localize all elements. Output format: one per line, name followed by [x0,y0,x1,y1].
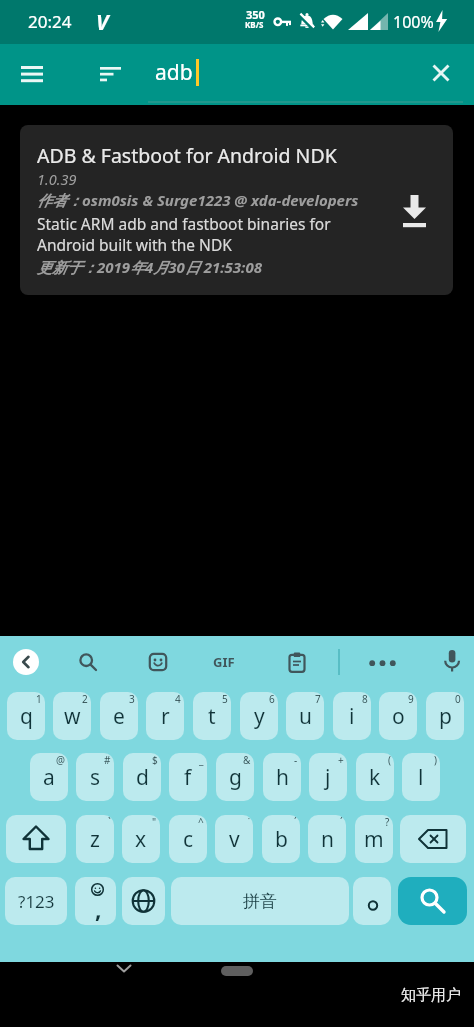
staticText: 知乎用户 [401,986,461,1005]
staticText: ˙ [248,815,250,829]
staticText: 100% [393,11,434,33]
staticText: GIF [213,653,235,671]
staticText: u [299,702,312,731]
staticText: 9 [408,692,414,706]
button[interactable] [10,54,54,94]
button[interactable] [400,815,466,863]
button[interactable] [419,54,463,94]
button[interactable] [140,644,176,680]
staticText: m [364,825,384,854]
button[interactable]: f [169,753,207,801]
button[interactable]: p [426,692,464,740]
button[interactable]: s [76,753,114,801]
button[interactable] [6,815,66,863]
staticText: x [135,825,147,854]
button[interactable]: GIF [210,648,248,676]
staticText: ?123 [18,890,55,913]
button[interactable]: ADB & Fastboot for Android NDK [20,125,453,295]
staticText: KB/S [245,19,264,30]
button[interactable] [13,649,39,675]
button[interactable]: l [402,753,440,801]
button[interactable]: u [286,692,324,740]
button[interactable]: i [333,692,371,740]
button[interactable] [90,54,132,94]
staticText: 1 [36,692,42,706]
staticText: ) [434,753,437,767]
staticText: ´ [294,815,297,829]
staticText: @ [56,753,65,767]
staticText: t [208,702,216,731]
button[interactable]: d [123,753,161,801]
button[interactable] [70,644,106,680]
staticText: z [90,825,100,854]
staticText: y [254,702,265,731]
button[interactable]: o [379,692,417,740]
button[interactable]: , [75,877,116,925]
button[interactable]: e [100,692,138,740]
button[interactable]: ?123 [5,877,67,925]
button[interactable]: k [356,753,394,801]
staticText: + [338,753,344,767]
button[interactable] [365,648,401,678]
button[interactable]: r [146,692,184,740]
button[interactable] [353,877,391,925]
staticText: 2 [82,692,88,706]
staticText: b [275,825,288,854]
staticText: ADB & Fastboot for Android NDK [37,142,337,169]
staticText: k [369,763,381,792]
staticText: # [104,753,111,767]
staticText: , [95,893,102,924]
button[interactable] [390,185,440,235]
button[interactable]: y [240,692,278,740]
staticText: " [152,815,157,829]
staticText: 350 [246,7,265,22]
staticText: s [90,763,101,792]
staticText: 20:24 [28,10,72,33]
button[interactable]: m [355,815,393,863]
staticText: i [349,702,355,731]
button[interactable]: c [169,815,207,863]
button[interactable]: v [215,815,253,863]
staticText: Static ARM adb and fastboot binaries for… [37,213,377,256]
staticText: g [229,763,242,792]
staticText: 更新于：2019年4月30日 21:53:08 [37,257,262,277]
staticText: p [439,702,452,731]
button[interactable] [398,877,467,925]
button[interactable] [104,954,144,984]
staticText: 0 [455,692,461,706]
button[interactable]: n [308,815,346,863]
button[interactable]: g [216,753,254,801]
button[interactable] [279,644,315,680]
staticText: 拼音 [243,891,277,912]
button[interactable]: h [263,753,301,801]
button[interactable]: b [262,815,300,863]
staticText: o [392,702,405,731]
staticText: h [276,763,289,792]
button[interactable]: a [30,753,68,801]
staticText: f [184,763,192,792]
staticText: 3 [129,692,135,706]
staticText: 8 [362,692,368,706]
staticText: e [113,702,125,731]
button[interactable] [221,966,253,976]
button[interactable]: q [7,692,45,740]
staticText: ´ [340,815,343,829]
button[interactable] [122,877,165,925]
staticText: ( [388,753,391,767]
button[interactable]: 拼音 [171,877,349,925]
staticText: w [64,702,81,731]
button[interactable]: t [193,692,231,740]
staticText: ^ [198,815,204,829]
staticText: 作者：osm0sis & Surge1223 @ xda-developers [37,190,359,210]
staticText: 5 [222,692,228,706]
staticText: 4 [175,692,181,706]
button[interactable]: j [309,753,347,801]
button[interactable] [435,644,471,680]
button[interactable]: x [122,815,160,863]
button[interactable]: z [76,815,114,863]
staticText: 6 [269,692,275,706]
staticText: r [161,702,170,731]
staticText: V [96,8,109,37]
button[interactable]: w [53,692,91,740]
staticText: - [294,753,298,767]
